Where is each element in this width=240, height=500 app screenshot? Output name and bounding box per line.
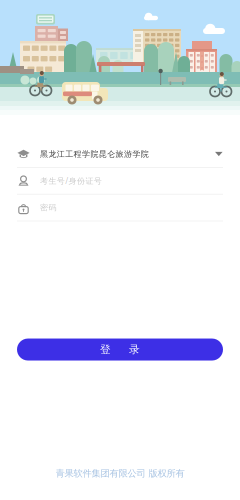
button[interactable]: 密码 <box>17 195 223 221</box>
staticText: 黑龙江工程学院昆仑旅游学院 <box>40 149 149 159</box>
button[interactable]: 考生号/身份证号 <box>17 168 223 195</box>
button[interactable]: 黑龙江工程学院昆仑旅游学院 <box>17 141 223 168</box>
staticText: 青果软件集团有限公司 版权所有 <box>55 467 184 479</box>
staticText: 登 录 <box>100 343 140 356</box>
button[interactable]: 登 录 <box>17 338 223 360</box>
staticText: 密码 <box>40 203 56 213</box>
staticText: 考生号/身份证号 <box>40 175 102 186</box>
